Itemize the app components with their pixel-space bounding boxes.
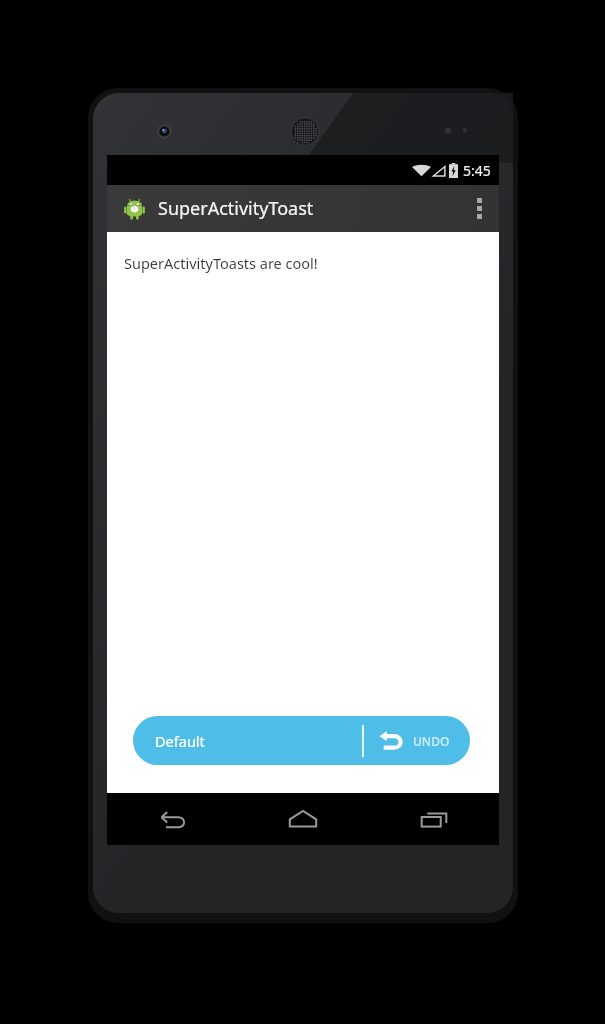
button[interactable]: Undo [364, 716, 470, 765]
staticText: Default [155, 731, 205, 751]
staticText: SuperActivityToast [158, 196, 314, 221]
button[interactable]: Home [237, 793, 368, 845]
button[interactable]: Default [133, 716, 470, 765]
staticText: SuperActivityToasts are cool! [124, 253, 318, 273]
staticText: 5:45 [463, 161, 491, 180]
button[interactable]: More options [459, 185, 499, 232]
other: Undo [378, 730, 404, 752]
button[interactable]: Recent apps [368, 793, 499, 845]
button[interactable]: Back [107, 793, 237, 845]
staticText: UNDO [413, 733, 450, 749]
